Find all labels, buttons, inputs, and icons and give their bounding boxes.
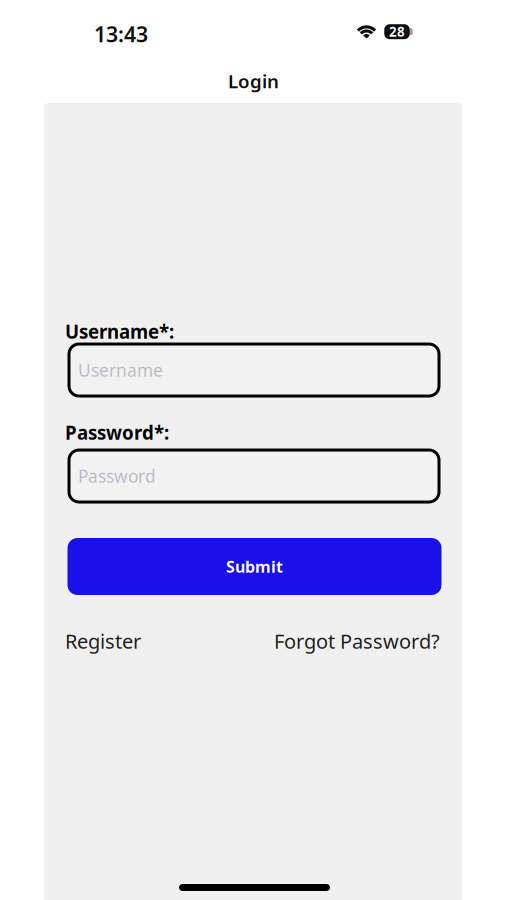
staticText: Register xyxy=(65,628,141,654)
button[interactable]: Password xyxy=(69,450,439,502)
staticText: 28 xyxy=(389,23,405,40)
staticText: Password xyxy=(78,464,156,487)
staticText: Submit xyxy=(226,556,283,577)
button[interactable]: Forgot Password? xyxy=(274,628,440,654)
button[interactable]: Username xyxy=(69,344,439,396)
staticText: Username*: xyxy=(65,319,174,344)
button[interactable]: Register xyxy=(65,628,141,654)
staticText: Password*: xyxy=(65,420,169,445)
button[interactable]: Submit xyxy=(67,538,441,595)
staticText: 13:43 xyxy=(94,20,148,48)
staticText: Username xyxy=(78,358,163,381)
staticText: Forgot Password? xyxy=(274,628,440,654)
staticText: Login xyxy=(228,69,279,93)
